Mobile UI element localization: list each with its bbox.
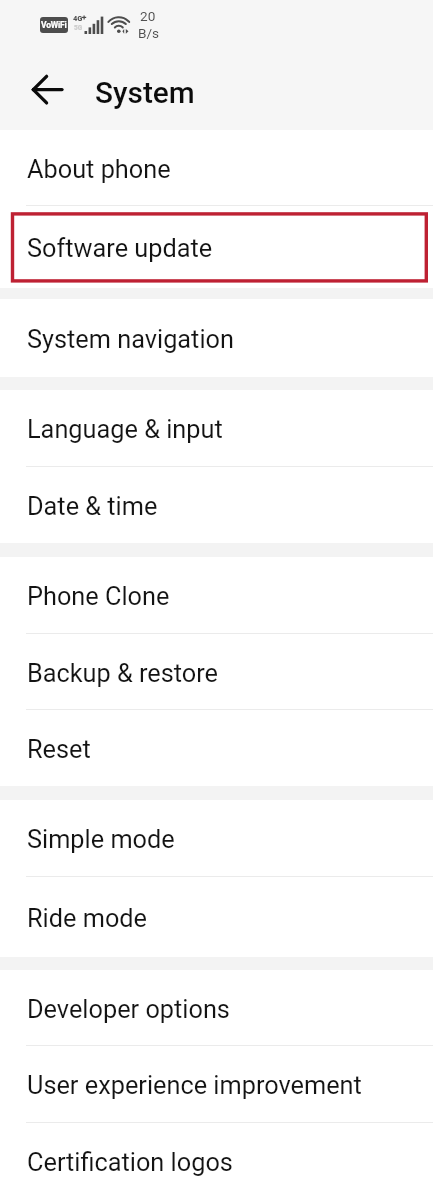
staticText: Backup & restore bbox=[27, 659, 219, 689]
staticText: B/s bbox=[138, 25, 160, 41]
button[interactable]: Reset bbox=[0, 710, 433, 786]
staticText: Language & input bbox=[27, 415, 223, 445]
button[interactable]: User experience improvement bbox=[0, 1046, 433, 1123]
button[interactable]: About phone bbox=[0, 130, 433, 206]
staticText: 4G bbox=[73, 14, 83, 23]
button[interactable]: Backup & restore bbox=[0, 634, 433, 710]
button[interactable]: Software update bbox=[0, 206, 433, 288]
staticText: Certification logos bbox=[27, 1148, 233, 1178]
staticText: Ride mode bbox=[27, 904, 147, 934]
staticText: System navigation bbox=[27, 325, 234, 355]
staticText: Phone Clone bbox=[27, 582, 170, 612]
button[interactable]: Language & input bbox=[0, 390, 433, 467]
staticText: 20 bbox=[140, 8, 156, 24]
button[interactable]: Ride mode bbox=[0, 877, 433, 957]
staticText: User experience improvement bbox=[27, 1071, 362, 1101]
staticText: Software update bbox=[27, 234, 213, 264]
button[interactable]: Simple mode bbox=[0, 800, 433, 877]
staticText: Simple mode bbox=[27, 825, 175, 855]
staticText: System bbox=[95, 75, 195, 110]
button[interactable]: Back bbox=[6, 56, 73, 123]
button[interactable]: System navigation bbox=[0, 299, 433, 377]
button[interactable]: Phone Clone bbox=[0, 557, 433, 634]
button[interactable]: Date & time bbox=[0, 467, 433, 544]
staticText: Reset bbox=[27, 735, 91, 765]
button[interactable]: Certification logos bbox=[0, 1123, 433, 1187]
staticText: About phone bbox=[27, 155, 171, 185]
staticText: Date & time bbox=[27, 492, 158, 522]
staticText: 5G bbox=[74, 24, 83, 32]
button[interactable]: Developer options bbox=[0, 970, 433, 1046]
staticText: VoWiFi bbox=[41, 20, 67, 30]
staticText: Developer options bbox=[27, 995, 230, 1025]
